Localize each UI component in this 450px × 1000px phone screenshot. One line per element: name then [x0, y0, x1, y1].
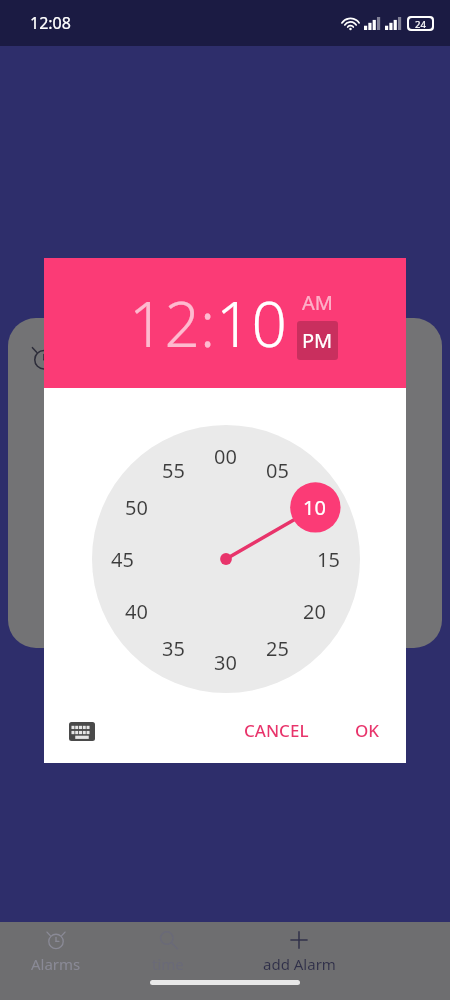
staticText: AM — [302, 289, 333, 316]
button[interactable]: PM — [297, 321, 338, 360]
button[interactable]: 10 — [216, 281, 287, 365]
button[interactable] — [92, 425, 360, 693]
button[interactable]: 55 — [155, 456, 191, 484]
staticText: 55 — [162, 457, 185, 484]
staticText: 00 — [214, 443, 237, 470]
button[interactable]: CANCEL — [230, 709, 323, 752]
button[interactable]: Switch to keyboard input — [62, 711, 102, 751]
staticText: Alarms — [31, 954, 81, 974]
button[interactable]: OK — [341, 709, 394, 752]
staticText: 15 — [317, 546, 340, 573]
button[interactable]: 40 — [118, 597, 154, 625]
button[interactable]: AM — [297, 287, 338, 318]
staticText: OK — [355, 719, 380, 742]
staticText: 10 — [216, 281, 287, 365]
button[interactable]: 00 — [207, 442, 243, 470]
staticText: 12:08 — [30, 12, 71, 34]
staticText: 24 — [415, 18, 426, 29]
staticText: 35 — [162, 635, 185, 662]
staticText: Set an alarm — [72, 344, 196, 373]
staticText: 45 — [111, 546, 134, 573]
button[interactable]: 10 — [296, 493, 332, 521]
staticText: 05 — [266, 457, 289, 484]
staticText: 10 — [303, 494, 326, 521]
staticText: : — [200, 281, 216, 365]
staticText: 25 — [266, 635, 289, 662]
button[interactable]: 12 — [129, 281, 200, 365]
button[interactable]: 45 — [104, 545, 140, 573]
staticText: 20 — [303, 598, 326, 625]
staticText: CANCEL — [244, 719, 309, 742]
staticText: 50 — [125, 494, 148, 521]
button[interactable]: 30 — [207, 648, 243, 676]
staticText: add Alarm — [263, 954, 336, 974]
button[interactable]: Alarms — [0, 924, 112, 978]
staticText: 30 — [214, 649, 237, 676]
button[interactable]: 35 — [155, 634, 191, 662]
button[interactable]: 15 — [310, 545, 346, 573]
button[interactable]: add Alarm — [224, 924, 374, 978]
staticText: 12 — [129, 281, 200, 365]
button[interactable]: 20 — [296, 597, 332, 625]
button[interactable]: 05 — [259, 456, 295, 484]
staticText: 40 — [125, 598, 148, 625]
button[interactable]: 50 — [118, 493, 154, 521]
staticText: PM — [302, 327, 333, 354]
button[interactable]: 25 — [259, 634, 295, 662]
